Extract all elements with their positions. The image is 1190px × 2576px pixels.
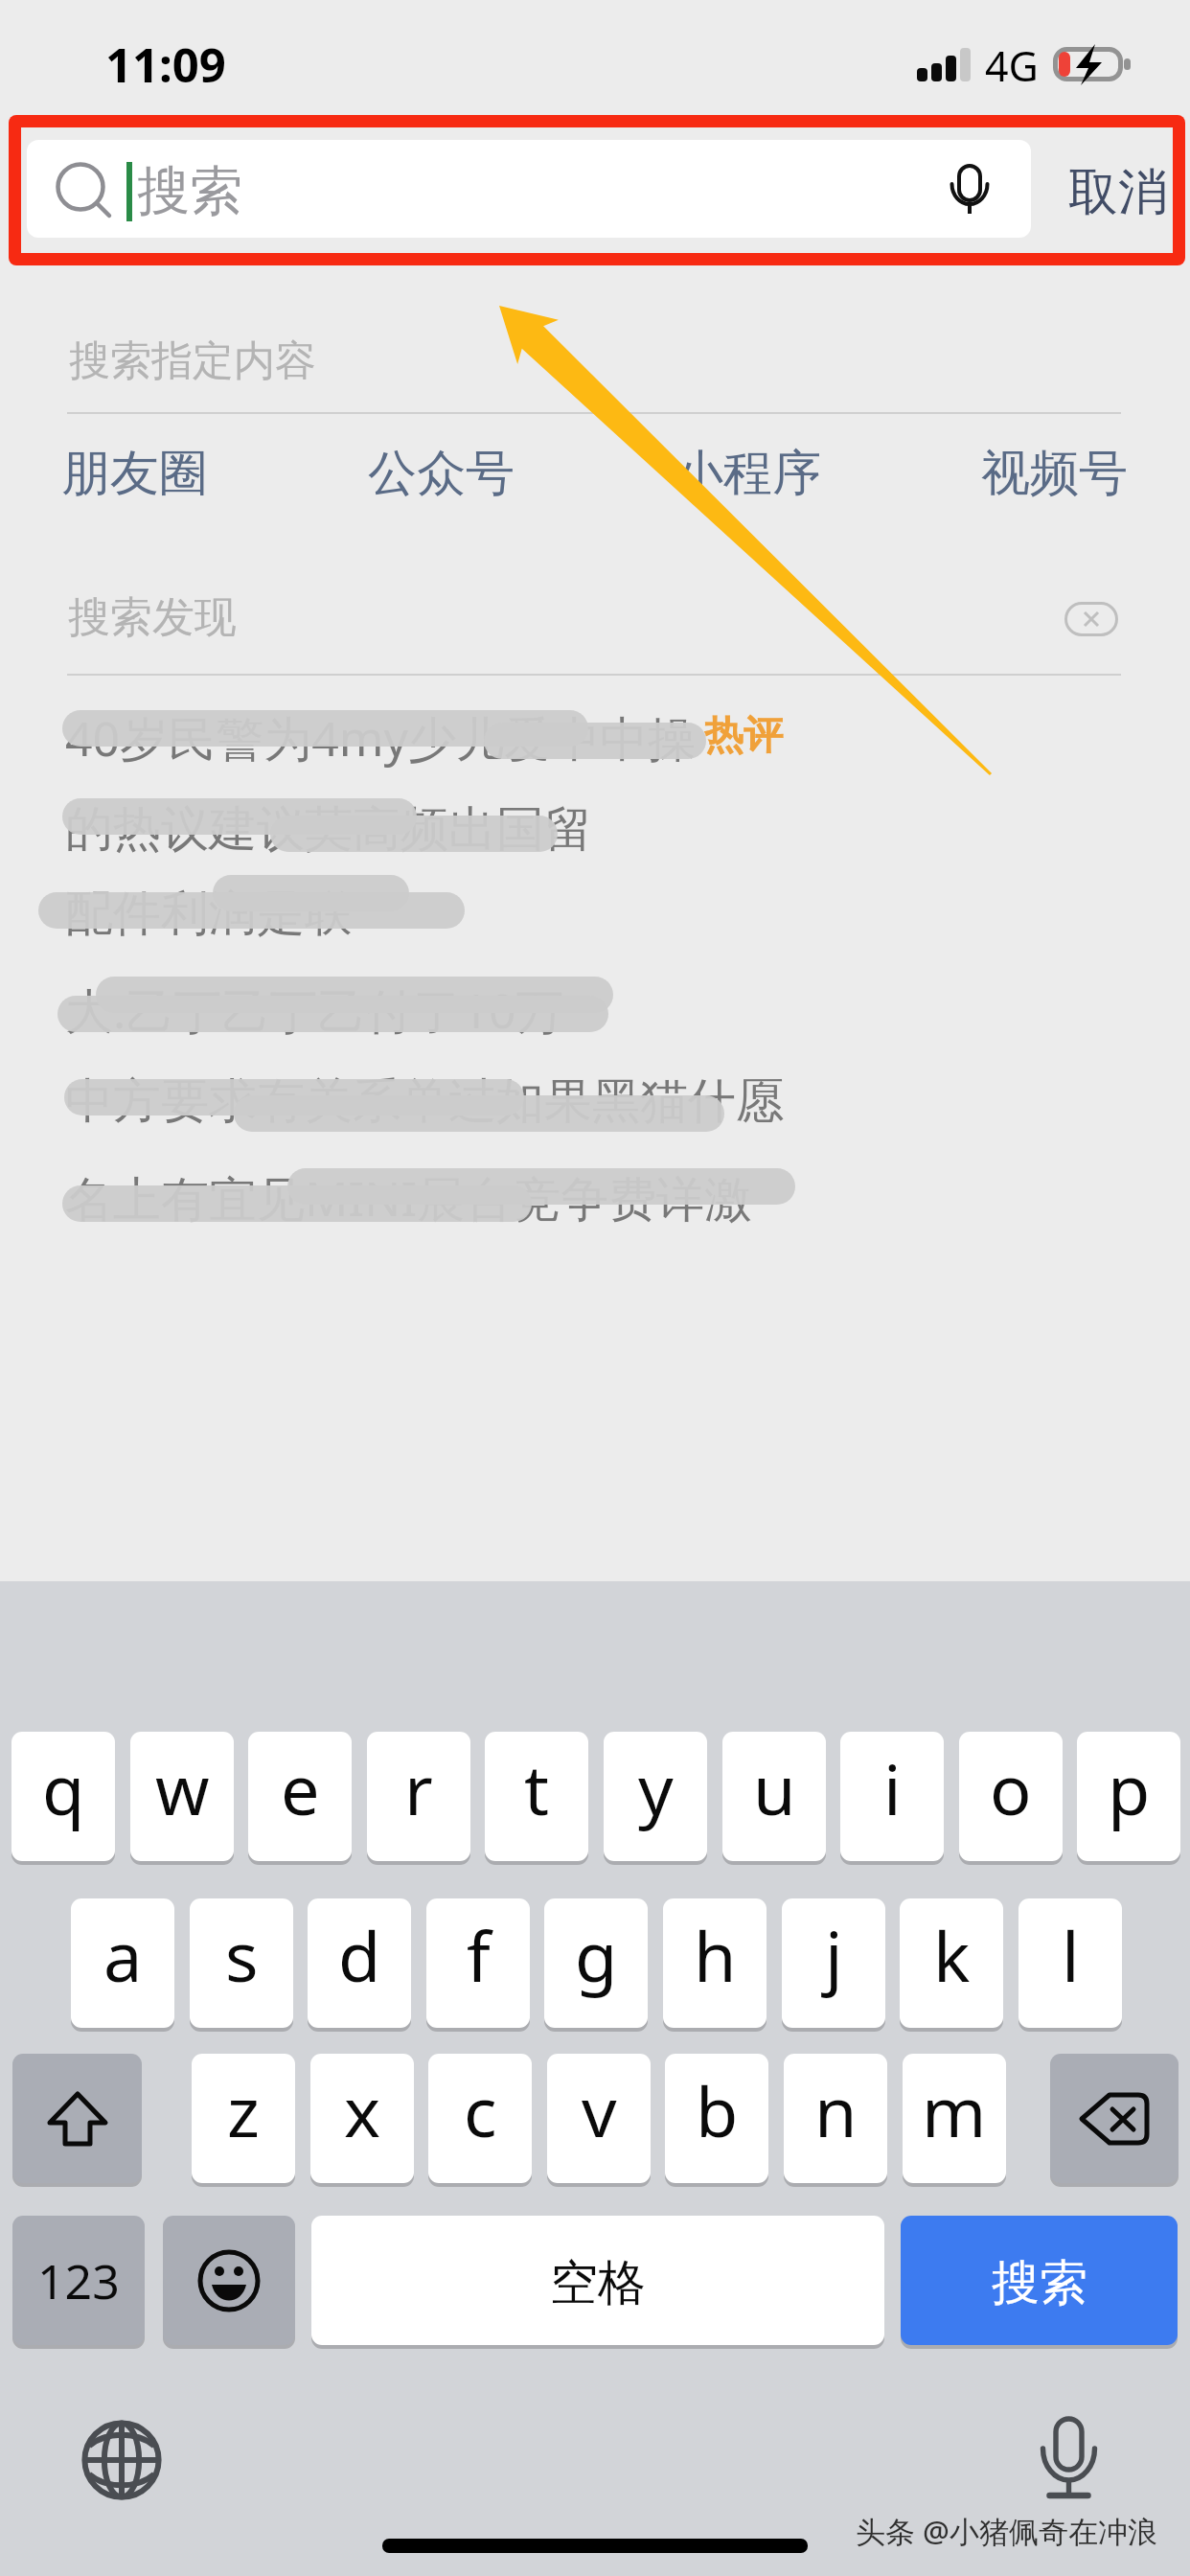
staticText: 搜索 (137, 158, 242, 224)
staticText: a (103, 1908, 143, 2002)
button[interactable]: r (367, 1732, 470, 1861)
staticText: 大:乙丁乙丁乙付了10万 (65, 977, 564, 1043)
button[interactable]: d (308, 1898, 411, 2028)
button[interactable]: 空格 (311, 2216, 884, 2345)
button[interactable]: Dictation (1020, 2410, 1126, 2516)
button[interactable]: s (190, 1898, 293, 2028)
staticText: 的热议建议莫高频出国留 (65, 799, 592, 860)
button[interactable]: y (604, 1732, 707, 1861)
button[interactable]: f (426, 1898, 530, 2028)
staticText: m (922, 2063, 987, 2157)
staticText: c (464, 2063, 497, 2157)
staticText: 小程序 (675, 443, 821, 504)
staticText: l (1062, 1908, 1080, 2002)
staticText: 搜索指定内容 (69, 335, 316, 387)
staticText: 配件利润是联 (65, 884, 353, 944)
staticText: b (696, 2063, 739, 2157)
button[interactable]: 搜索 (27, 140, 1031, 238)
staticText: x (344, 2063, 381, 2157)
button[interactable]: z (192, 2054, 295, 2183)
button[interactable]: u (722, 1732, 826, 1861)
staticText: 搜索发现 (68, 591, 237, 644)
staticText: k (933, 1908, 971, 2002)
staticText: 视频号 (981, 443, 1128, 504)
button[interactable]: e (248, 1732, 352, 1861)
button[interactable]: w (130, 1732, 234, 1861)
staticText: 朋友圈 (61, 443, 208, 504)
button[interactable]: x (310, 2054, 414, 2183)
staticText: 40岁民警为4my少儿爱中中操 (65, 705, 697, 770)
button[interactable]: 搜索 (901, 2216, 1178, 2345)
button[interactable]: b (665, 2054, 768, 2183)
staticText: y (638, 1741, 674, 1835)
staticText: t (524, 1741, 549, 1835)
button[interactable]: j (782, 1898, 885, 2028)
staticText: i (883, 1741, 902, 1835)
button[interactable]: t (485, 1732, 588, 1861)
staticText: v (582, 2063, 617, 2157)
staticText: 取消 (1068, 161, 1168, 224)
staticText: j (825, 1908, 843, 2002)
staticText: q (42, 1741, 85, 1835)
button[interactable]: Shift (12, 2054, 142, 2183)
staticText: 11:09 (105, 33, 226, 97)
staticText: n (814, 2063, 858, 2157)
staticText: 123 (37, 2248, 120, 2313)
staticText: e (281, 1741, 320, 1835)
button[interactable]: i (840, 1732, 944, 1861)
button[interactable]: c (428, 2054, 532, 2183)
staticText: o (990, 1741, 1032, 1835)
staticText: 热评 (704, 711, 783, 761)
staticText: 4G (985, 37, 1039, 94)
button[interactable]: a (71, 1898, 174, 2028)
button[interactable]: 公众号 (335, 436, 546, 511)
button[interactable]: Change keyboard (77, 2415, 167, 2505)
staticText: 中方要求有关系单过如果黑猫什愿 (65, 1071, 784, 1132)
button[interactable]: 视频号 (949, 436, 1159, 511)
button[interactable]: 123 (12, 2216, 145, 2345)
staticText: 头条 @小猪佩奇在冲浪 (856, 2511, 1157, 2551)
staticText: 名上有宜见MINI展台竞争费详激 (65, 1165, 753, 1230)
button[interactable]: o (959, 1732, 1063, 1861)
button[interactable]: n (784, 2054, 887, 2183)
staticText: h (694, 1908, 737, 2002)
staticText: g (575, 1908, 618, 2002)
button[interactable]: 朋友圈 (29, 436, 240, 511)
button[interactable]: Backspace (1050, 2054, 1179, 2183)
button[interactable]: l (1018, 1898, 1122, 2028)
button[interactable]: h (663, 1898, 767, 2028)
button[interactable]: p (1077, 1732, 1180, 1861)
staticText: f (467, 1908, 491, 2002)
staticText: d (338, 1908, 381, 2002)
staticText: 公众号 (368, 443, 515, 504)
staticText: 搜索 (992, 2253, 1087, 2313)
staticText: s (225, 1908, 259, 2002)
staticText: z (227, 2063, 260, 2157)
button[interactable]: q (11, 1732, 115, 1861)
button[interactable]: 取消 (1045, 144, 1190, 241)
staticText: r (404, 1741, 433, 1835)
button[interactable]: g (544, 1898, 648, 2028)
button[interactable]: 小程序 (642, 436, 853, 511)
button[interactable]: Emoji (163, 2216, 295, 2345)
button[interactable]: v (547, 2054, 651, 2183)
button[interactable]: Voice search (924, 159, 1016, 222)
button[interactable]: k (900, 1898, 1003, 2028)
staticText: p (1108, 1741, 1151, 1835)
staticText: w (155, 1741, 210, 1835)
button[interactable]: m (903, 2054, 1006, 2183)
staticText: 空格 (550, 2253, 646, 2313)
staticText: u (753, 1741, 796, 1835)
button[interactable]: Clear search history (1064, 602, 1118, 636)
